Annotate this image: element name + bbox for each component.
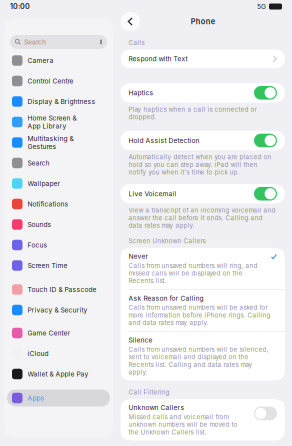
staticText: View a transcript of an incoming voicema… (128, 206, 275, 229)
button[interactable]: Search (7, 154, 110, 171)
button[interactable]: Privacy & Security (7, 301, 110, 318)
button[interactable]: Haptics (120, 83, 285, 103)
button[interactable]: iCloud (7, 345, 110, 362)
button[interactable]: Never (120, 248, 285, 289)
staticText: Search (27, 159, 49, 167)
staticText: Calls from unsaved numbers will ring, an… (128, 262, 257, 285)
staticText: Privacy & Security (27, 306, 87, 314)
button[interactable]: Display & Brightness (7, 93, 110, 110)
button[interactable]: Camera (7, 52, 110, 69)
button[interactable]: Control Centre (7, 72, 110, 89)
staticText: 5G (257, 2, 266, 11)
staticText: Screen Time (27, 261, 67, 270)
button[interactable]: Home Screen & App Library (7, 113, 110, 130)
staticText: Respond with Text (128, 55, 187, 63)
staticText: Screen Unknown Callers (128, 237, 205, 245)
button[interactable]: Wallpaper (7, 175, 110, 192)
button[interactable]: Unknown Callers (120, 399, 285, 440)
button[interactable]: Sounds (7, 216, 110, 233)
button[interactable]: Focus (7, 236, 110, 253)
staticText: Wallpaper (27, 179, 60, 188)
staticText: Automatically detect when you are placed… (128, 153, 271, 176)
button[interactable]: Ask Reason for Calling (120, 290, 285, 331)
staticText: Search (24, 38, 46, 46)
staticText: Calls from unsaved numbers will be silen… (128, 346, 268, 376)
staticText: Hold Assist Detection (128, 136, 199, 145)
staticText: Ask Reason for Calling (128, 294, 203, 302)
staticText: Apps (27, 394, 44, 402)
staticText: Phone (191, 17, 215, 26)
button[interactable]: Screen Time (7, 257, 110, 274)
staticText: Silence (128, 336, 152, 344)
staticText: Control Centre (27, 77, 73, 85)
staticText: Game Center (27, 329, 70, 337)
button[interactable]: Notifications (7, 195, 110, 212)
staticText: Play haptics when a call is connected or… (128, 106, 256, 121)
staticText: Sounds (27, 220, 51, 229)
button[interactable]: Back (120, 12, 140, 31)
staticText: Live Voicemail (128, 190, 176, 198)
staticText: Missed calls and voicemail from unknown … (128, 413, 237, 436)
staticText: Unknown Callers (128, 404, 184, 412)
staticText: Camera (27, 56, 53, 65)
staticText: Wallet & Apple Pay (27, 370, 88, 378)
staticText: Haptics (128, 89, 153, 97)
staticText: Calls from unsaved numbers will be asked… (128, 304, 270, 326)
staticText: 10:00 (10, 2, 30, 11)
staticText: Touch ID & Passcode (27, 285, 96, 294)
button[interactable]: Wallet & Apple Pay (7, 365, 110, 382)
button[interactable]: Apps (7, 389, 110, 406)
button[interactable]: Silence (120, 332, 285, 380)
button[interactable]: Touch ID & Passcode (7, 281, 110, 298)
staticText: iCloud (27, 349, 48, 358)
staticText: Multitasking & Gestures (27, 134, 73, 150)
staticText: Never (128, 252, 148, 260)
button[interactable]: Respond with Text (120, 50, 285, 68)
staticText: Display & Brightness (27, 97, 95, 106)
staticText: Calls (128, 39, 144, 47)
staticText: Call Filtering (128, 388, 169, 396)
button[interactable]: Live Voicemail (120, 184, 285, 203)
button[interactable]: Multitasking & Gestures (7, 134, 110, 151)
staticText: Focus (27, 241, 47, 249)
button[interactable]: Hold Assist Detection (120, 131, 285, 150)
button[interactable]: Game Center (7, 324, 110, 341)
staticText: Notifications (27, 200, 68, 208)
staticText: Home Screen & App Library (27, 114, 76, 130)
